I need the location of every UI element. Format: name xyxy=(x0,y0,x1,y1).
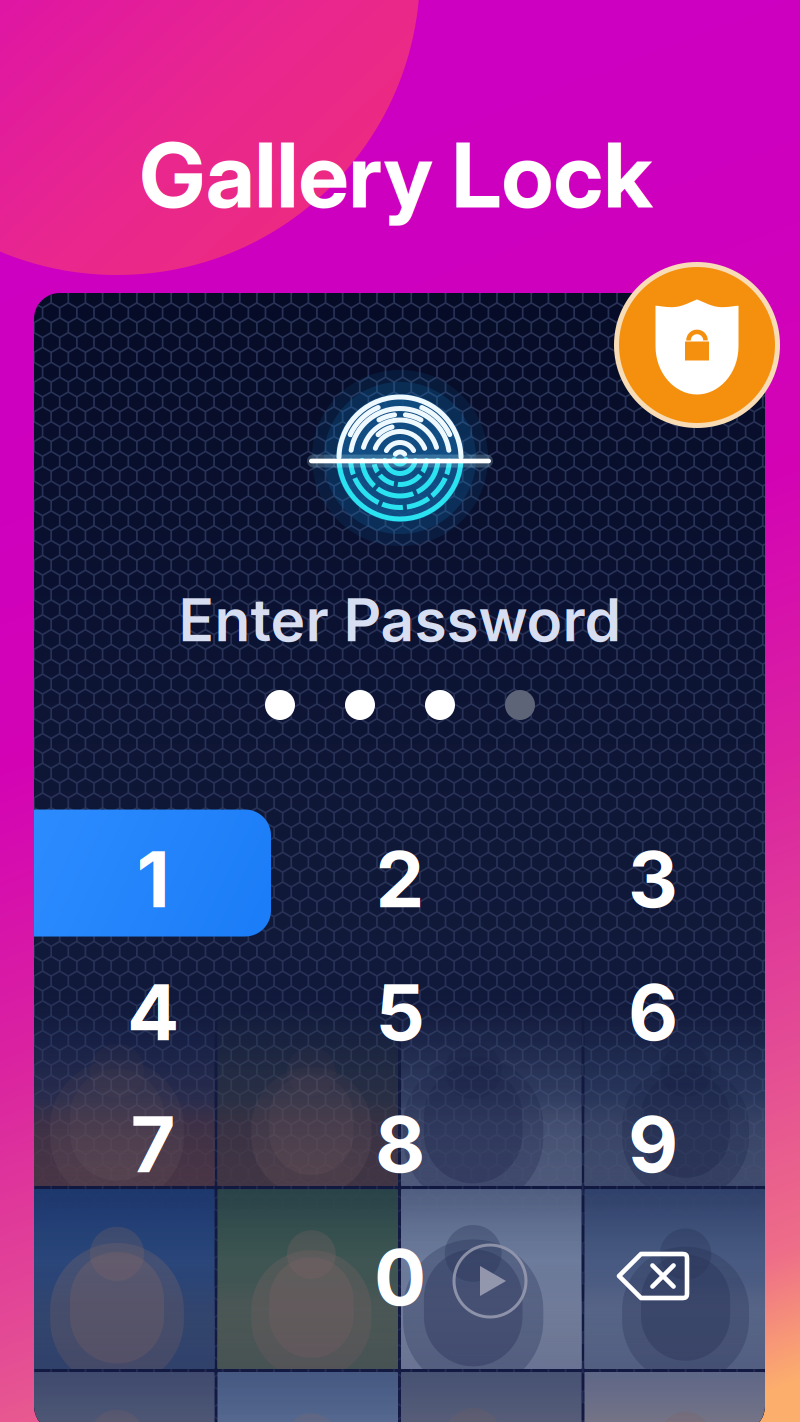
staticText: 0 xyxy=(374,1230,426,1324)
button[interactable]: Delete xyxy=(537,1210,769,1342)
button[interactable]: 7 xyxy=(37,1078,269,1210)
staticText: 3 xyxy=(628,832,678,926)
staticText: 1 xyxy=(136,832,169,926)
staticText: 5 xyxy=(375,965,424,1059)
button[interactable]: 6 xyxy=(537,946,769,1078)
button[interactable]: 3 xyxy=(537,813,769,945)
button[interactable]: 1 xyxy=(37,813,269,945)
button[interactable]: 9 xyxy=(537,1078,769,1210)
staticText: 4 xyxy=(127,965,179,1059)
staticText: 2 xyxy=(375,832,424,926)
staticText: 9 xyxy=(628,1097,678,1191)
staticText: Enter Password xyxy=(178,584,621,655)
staticText: Gallery Lock xyxy=(139,121,652,229)
button[interactable]: 5 xyxy=(284,946,516,1078)
button[interactable]: App lock xyxy=(614,262,780,428)
button[interactable]: 2 xyxy=(284,813,516,945)
button[interactable]: 0 xyxy=(284,1211,516,1343)
staticText: 7 xyxy=(130,1097,175,1191)
button[interactable]: 4 xyxy=(37,946,269,1078)
staticText: 6 xyxy=(628,965,678,1059)
button[interactable]: 8 xyxy=(284,1078,516,1210)
staticText: 8 xyxy=(375,1097,425,1191)
